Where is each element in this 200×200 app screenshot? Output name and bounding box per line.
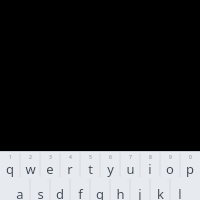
staticText: r: [67, 160, 73, 178]
button[interactable]: 9: [160, 152, 180, 178]
button[interactable]: d: [50, 177, 70, 200]
staticText: 0: [189, 154, 192, 161]
button[interactable]: 1: [0, 152, 20, 178]
button[interactable]: 0: [180, 152, 200, 178]
button[interactable]: j: [130, 177, 150, 200]
staticText: 4: [69, 154, 72, 161]
button[interactable]: 3: [40, 152, 60, 178]
staticText: h: [116, 185, 125, 200]
button[interactable]: k: [150, 177, 170, 200]
staticText: p: [186, 160, 194, 178]
staticText: u: [126, 160, 135, 178]
staticText: f: [78, 185, 83, 200]
staticText: k: [157, 185, 164, 200]
button[interactable]: h: [110, 177, 130, 200]
staticText: a: [16, 185, 24, 200]
staticText: s: [37, 185, 44, 200]
staticText: 8: [149, 154, 152, 161]
button[interactable]: a: [10, 177, 30, 200]
staticText: e: [46, 160, 54, 178]
staticText: q: [6, 160, 14, 178]
button[interactable]: g: [90, 177, 110, 200]
button[interactable]: 6: [100, 152, 120, 178]
staticText: 6: [109, 154, 112, 161]
button[interactable]: 7: [120, 152, 140, 178]
staticText: l: [178, 185, 182, 200]
staticText: 2: [29, 154, 32, 161]
staticText: y: [107, 160, 114, 178]
staticText: 3: [49, 154, 52, 161]
button[interactable]: 4: [60, 152, 80, 178]
button[interactable]: 2: [20, 152, 40, 178]
button[interactable]: s: [30, 177, 50, 200]
staticText: d: [56, 185, 64, 200]
button[interactable]: 8: [140, 152, 160, 178]
staticText: 9: [169, 154, 172, 161]
staticText: t: [88, 160, 93, 178]
staticText: 5: [89, 154, 92, 161]
staticText: g: [96, 185, 104, 200]
staticText: i: [148, 160, 152, 178]
staticText: o: [166, 160, 174, 178]
button[interactable]: l: [170, 177, 190, 200]
button[interactable]: f: [70, 177, 90, 200]
button[interactable]: 5: [80, 152, 100, 178]
staticText: 1: [9, 154, 12, 161]
staticText: j: [138, 185, 142, 200]
staticText: w: [25, 160, 36, 178]
staticText: 7: [129, 154, 132, 161]
